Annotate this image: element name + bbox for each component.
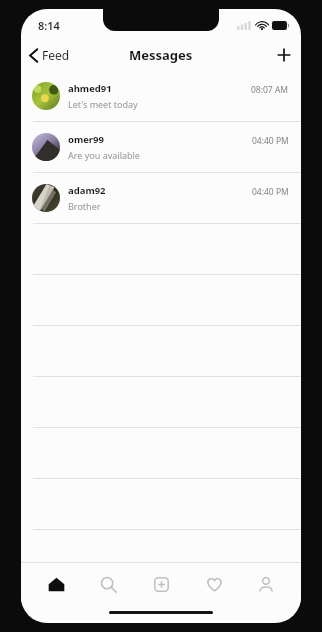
button[interactable]: ahmed91 xyxy=(21,71,301,121)
staticText: 04:40 PM xyxy=(252,135,289,147)
button[interactable]: omer99 xyxy=(21,122,301,172)
button[interactable]: Feed xyxy=(21,43,78,67)
staticText: adam92 xyxy=(68,184,106,197)
button[interactable]: Search xyxy=(84,564,132,604)
button[interactable]: Profile xyxy=(242,564,290,604)
staticText: ahmed91 xyxy=(68,82,112,95)
staticText: 8:14 xyxy=(38,18,60,33)
staticText: omer99 xyxy=(68,133,104,146)
staticText: Feed xyxy=(42,47,70,63)
button[interactable]: adam92 xyxy=(21,173,301,223)
staticText: Brother xyxy=(68,200,101,212)
button[interactable]: Activity xyxy=(190,564,238,604)
staticText: Are you available xyxy=(68,149,140,161)
button[interactable]: Add post xyxy=(137,564,185,604)
button[interactable]: Home xyxy=(32,564,80,604)
button[interactable]: New message xyxy=(267,42,301,68)
staticText: Let's meet today xyxy=(68,98,138,110)
staticText: 08:07 AM xyxy=(251,84,289,96)
staticText: Messages xyxy=(129,46,193,64)
staticText: 04:40 PM xyxy=(252,186,289,198)
